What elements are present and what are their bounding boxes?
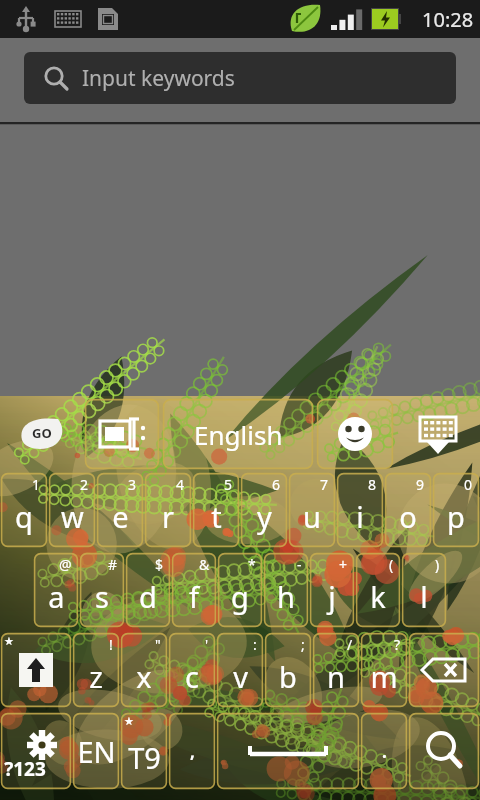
staticText: @ (59, 555, 72, 574)
staticText: w (61, 497, 84, 536)
staticText: : (253, 635, 257, 654)
staticText: i (356, 497, 364, 536)
staticText: $ (155, 555, 164, 574)
button[interactable]: d (125, 552, 171, 628)
button[interactable]: English (162, 398, 314, 470)
staticText: 1 (32, 475, 41, 494)
button[interactable]: g (217, 552, 263, 628)
button[interactable]: Backspace (408, 632, 480, 708)
button[interactable]: i (336, 472, 384, 548)
staticText: - (297, 555, 302, 574)
staticText: q (15, 497, 33, 536)
staticText: # (108, 555, 118, 574)
staticText: u (303, 497, 321, 536)
staticText: 6 (272, 475, 281, 494)
staticText: b (279, 657, 297, 696)
button[interactable]: Emoji (316, 398, 394, 470)
staticText: / (347, 635, 353, 654)
button[interactable]: b (264, 632, 312, 708)
button[interactable]: y (240, 472, 288, 548)
button[interactable]: k (355, 552, 401, 628)
button[interactable]: Symbols and settings (0, 712, 72, 790)
staticText: ' (205, 635, 209, 654)
button[interactable]: GO Keyboard menu (12, 398, 76, 470)
button[interactable]: f (171, 552, 217, 628)
button[interactable]: j (309, 552, 355, 628)
staticText: 8 (368, 475, 377, 494)
staticText: ? (394, 635, 401, 654)
button[interactable]: Search (408, 712, 480, 790)
button[interactable]: m (360, 632, 408, 708)
staticText: ( (389, 555, 394, 574)
staticText: . (382, 740, 387, 763)
staticText: n (327, 657, 345, 696)
button[interactable]: Hide keyboard (404, 398, 472, 470)
staticText: r (162, 497, 174, 536)
staticText: ★ (4, 635, 14, 648)
staticText: f (189, 577, 199, 616)
button[interactable]: h (263, 552, 309, 628)
staticText: 10:28 (422, 6, 474, 33)
button[interactable]: u (288, 472, 336, 548)
staticText: Input keywords (82, 64, 235, 93)
staticText: 7 (320, 475, 329, 494)
staticText: 2 (80, 475, 89, 494)
staticText: ! (109, 635, 113, 654)
staticText: y (257, 497, 272, 536)
staticText: 0 (464, 475, 473, 494)
button[interactable]: n (312, 632, 360, 708)
button[interactable]: . (360, 712, 408, 790)
button[interactable]: o (384, 472, 432, 548)
staticText: s (95, 577, 109, 616)
button[interactable]: Space (216, 712, 360, 790)
staticText: GO (32, 424, 52, 442)
staticText: EN (77, 732, 116, 771)
button[interactable]: v (216, 632, 264, 708)
button[interactable]: w (48, 472, 96, 548)
staticText: c (185, 657, 199, 696)
staticText: 4 (176, 475, 185, 494)
button[interactable]: s (79, 552, 125, 628)
button[interactable]: Input keywords (24, 52, 456, 104)
staticText: * (248, 555, 256, 574)
staticText: English (194, 417, 283, 452)
button[interactable]: p (432, 472, 480, 548)
button[interactable]: l (401, 552, 447, 628)
button[interactable]: , (168, 712, 216, 790)
staticText: ; (301, 635, 305, 654)
staticText: d (139, 577, 157, 616)
staticText: ?123 (4, 756, 46, 782)
staticText: 9 (416, 475, 425, 494)
staticText: g (231, 577, 249, 616)
button[interactable]: T9 (120, 712, 168, 790)
staticText: m (370, 657, 398, 696)
staticText: 5 (224, 475, 233, 494)
staticText: k (370, 577, 386, 616)
staticText: , (190, 740, 195, 763)
staticText: + (339, 555, 348, 574)
button[interactable]: c (168, 632, 216, 708)
staticText: t (211, 497, 222, 536)
staticText: a (48, 577, 65, 616)
staticText: v (233, 657, 248, 696)
button[interactable]: z (72, 632, 120, 708)
staticText: " (155, 635, 161, 654)
staticText: 3 (128, 475, 137, 494)
button[interactable]: q (0, 472, 48, 548)
staticText: o (399, 497, 417, 536)
staticText: h (277, 577, 295, 616)
staticText: e (112, 497, 129, 536)
staticText: & (199, 555, 210, 574)
button[interactable]: r (144, 472, 192, 548)
button[interactable]: e (96, 472, 144, 548)
staticText: x (136, 657, 152, 696)
staticText: j (328, 577, 336, 616)
button[interactable]: Input box settings (84, 398, 160, 470)
button[interactable]: Shift (0, 632, 72, 708)
staticText: z (89, 657, 103, 696)
staticText: T9 (128, 738, 161, 777)
button[interactable]: EN (72, 712, 120, 790)
button[interactable]: t (192, 472, 240, 548)
button[interactable]: a (33, 552, 79, 628)
button[interactable]: x (120, 632, 168, 708)
